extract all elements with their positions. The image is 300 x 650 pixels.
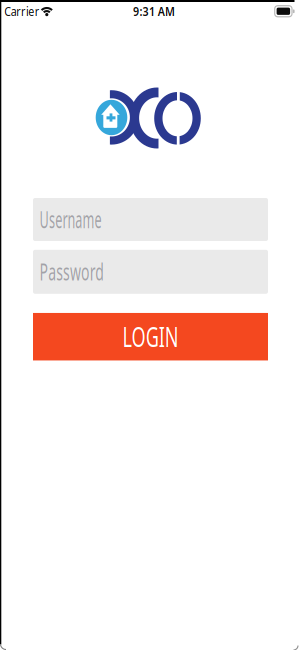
staticText: 9:31 AM (128, 2, 180, 20)
button[interactable]: Password (33, 250, 268, 294)
staticText: Password (39, 257, 143, 287)
staticText: LOGIN (109, 319, 191, 354)
button[interactable]: Username (33, 198, 268, 241)
staticText: Username (39, 204, 150, 234)
staticText: Carrier (0, 2, 44, 20)
button[interactable]: LOGIN (33, 313, 268, 360)
